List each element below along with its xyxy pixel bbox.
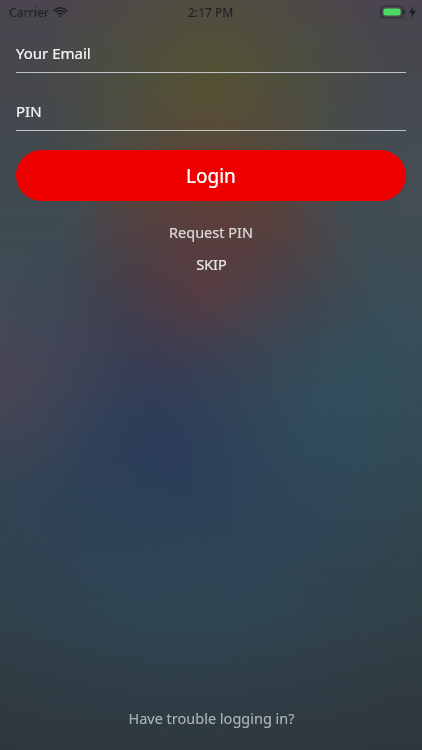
staticText: Your Email bbox=[16, 43, 91, 63]
staticText: Carrier bbox=[9, 4, 49, 20]
staticText: 2:17 PM bbox=[188, 4, 234, 20]
staticText: Have trouble logging in? bbox=[128, 708, 295, 728]
button[interactable]: Request PIN bbox=[0, 215, 422, 248]
button[interactable]: Your Email bbox=[16, 43, 406, 73]
staticText: Request PIN bbox=[169, 222, 253, 242]
staticText: PIN bbox=[16, 101, 42, 121]
staticText: SKIP bbox=[196, 254, 227, 274]
staticText: Login bbox=[186, 163, 236, 189]
button[interactable]: PIN bbox=[16, 101, 406, 131]
button[interactable]: Have trouble logging in? bbox=[0, 698, 422, 738]
button[interactable]: SKIP bbox=[0, 248, 422, 280]
button[interactable]: Login bbox=[16, 150, 406, 201]
